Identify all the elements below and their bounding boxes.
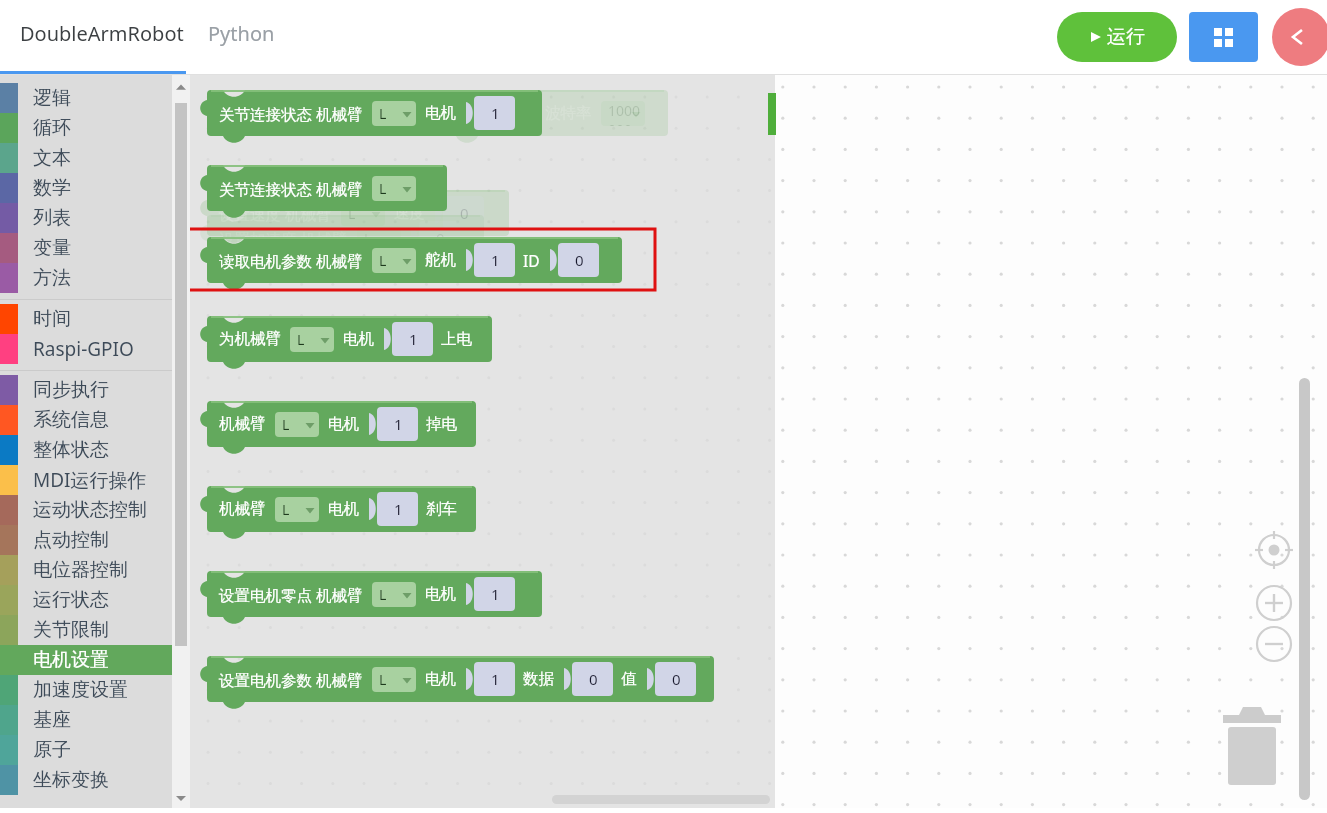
staticText: 0 [589,669,598,689]
button[interactable]: L [372,101,416,126]
staticText: 0 [460,203,469,223]
staticText: 读取电机参数 机械臂 [219,250,363,271]
button[interactable]: L [372,582,416,607]
staticText: 原子 [33,738,71,762]
staticText: 数据 [523,669,554,689]
button[interactable]: MDI运行操作 [0,465,172,495]
button[interactable]: 列表 [0,203,172,233]
staticText: A0 [499,104,516,123]
staticText: 循环 [33,116,71,140]
staticText: L [379,179,387,198]
button[interactable]: Back [1272,8,1327,66]
staticText: 同步执行 [33,378,109,402]
staticText: 1 [409,329,418,349]
button[interactable]: 方法 [0,263,172,293]
staticText: Raspi-GPIO [33,336,134,362]
staticText: 关节连接状态 机械臂 [219,103,363,124]
button[interactable]: L [275,412,319,437]
button[interactable]: L [341,201,385,226]
staticText: L [364,229,372,248]
button[interactable]: 电位器控制 [0,555,172,585]
staticText: 设置电机零点 机械臂 [219,584,363,605]
staticText: 设置电机参数 机械臂 [219,669,363,690]
staticText: 速度 [394,203,425,223]
staticText: 系统信息 [33,408,109,432]
button[interactable]: 1000000 [601,101,645,126]
staticText: 串口 [452,103,483,123]
button[interactable]: 循环 [0,113,172,143]
staticText: L [348,204,356,223]
button[interactable]: 变量 [0,233,172,263]
staticText: 整体状态 [33,438,109,462]
staticText: 列表 [33,206,71,230]
button[interactable]: 运行 [1057,12,1177,62]
staticText: L [379,585,387,604]
staticText: 电机设置 [33,648,109,672]
staticText: 设置速度 机械臂 [219,203,332,224]
button[interactable]: Raspi-GPIO [0,334,172,364]
button[interactable]: 数学 [0,173,172,203]
staticText: 1 [491,250,500,270]
button[interactable]: DoubleArmRobot [20,20,184,47]
staticText: 1 [394,499,403,519]
staticText: 电位器控制 [33,558,128,582]
staticText: 电机 [328,499,359,519]
staticText: 为机械臂 [219,329,281,349]
button[interactable]: L [290,327,334,352]
button[interactable]: Blocks view [1189,12,1258,62]
staticText: L [379,251,387,270]
staticText: L [282,500,290,519]
staticText: 方法 [33,266,71,290]
button[interactable]: 点动控制 [0,525,172,555]
staticText: 上电 [441,329,472,349]
staticText: L [379,670,387,689]
staticText: 时间 [33,307,71,331]
button[interactable]: L [357,226,401,251]
staticText: 点动控制 [33,528,109,552]
button[interactable]: Delete [1217,695,1287,775]
staticText: L [297,330,305,349]
button[interactable]: 同步执行 [0,375,172,405]
button[interactable]: 原子 [0,735,172,765]
button[interactable]: 运行状态 [0,585,172,615]
button[interactable]: L [275,497,319,522]
staticText: 坐标变换 [33,768,109,792]
button[interactable]: 逻辑 [0,83,172,113]
button[interactable]: 文本 [0,143,172,173]
button[interactable]: Zoom out [1244,620,1304,680]
staticText: 1 [491,669,500,689]
button[interactable]: L [372,248,416,273]
button[interactable]: 关节限制 [0,615,172,645]
staticText: 机械臂 [219,499,266,519]
staticText: 1 [491,584,500,604]
staticText: 逻辑 [33,86,71,110]
button[interactable]: 运动状态控制 [0,495,172,525]
staticText: 电机 [425,584,456,604]
button[interactable]: L [372,667,416,692]
staticText: 1 [394,414,403,434]
button[interactable]: 时间 [0,304,172,334]
button[interactable]: 电机设置 [0,645,172,675]
staticText: 1 [491,103,500,123]
staticText: 电机 [425,669,456,689]
button[interactable]: L [372,176,416,201]
button[interactable]: Python [208,20,275,47]
button[interactable]: Scroll up [174,81,188,95]
staticText: 变量 [33,236,71,260]
button[interactable]: 坐标变换 [0,765,172,795]
staticText: 基座 [33,708,71,732]
button[interactable]: 加速度设置 [0,675,172,705]
staticText: 运行 [1107,25,1145,49]
button[interactable]: 基座 [0,705,172,735]
staticText: 1000000 [608,101,645,126]
staticText: 电机 [343,329,374,349]
button[interactable]: Zoom controls [1244,530,1304,640]
button[interactable]: 系统信息 [0,405,172,435]
button[interactable]: 整体状态 [0,435,172,465]
staticText: 设置加速度 机械臂 [219,228,348,249]
button[interactable]: Scroll down [174,791,188,805]
staticText: 舵机 [425,250,456,270]
staticText: 0 [575,250,584,270]
button[interactable]: A0 [492,101,536,126]
